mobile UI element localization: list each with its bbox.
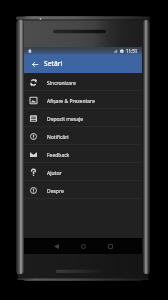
button[interactable]: Depozit mesaje	[24, 109, 142, 126]
staticText: Sincronizare	[47, 80, 76, 87]
staticText: Depozit mesaje	[47, 116, 84, 123]
staticText: Feedback	[47, 152, 70, 159]
staticText: 11:51	[126, 48, 138, 54]
button[interactable]: Despre	[24, 181, 142, 198]
staticText: Setări	[44, 59, 63, 68]
button[interactable]: Recent apps	[105, 238, 115, 254]
staticText: Despre	[47, 188, 64, 195]
staticText: Ajutor	[47, 170, 62, 177]
button[interactable]: Notificări	[24, 127, 142, 144]
staticText: Afișare & Prezentare	[47, 98, 95, 105]
button[interactable]: Sincronizare	[24, 73, 142, 90]
button[interactable]: Back	[51, 238, 61, 254]
button[interactable]: Afișare & Prezentare	[24, 91, 142, 108]
staticText: Notificări	[47, 134, 69, 141]
button[interactable]: Navigate up	[28, 55, 41, 73]
button[interactable]: Home	[78, 238, 88, 254]
button[interactable]: Ajutor	[24, 163, 142, 180]
button[interactable]: Feedback	[24, 145, 142, 162]
